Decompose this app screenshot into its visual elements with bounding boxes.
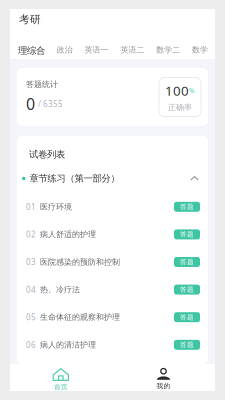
- staticText: %: [189, 86, 195, 95]
- staticText: 章节练习（第一部分）: [29, 173, 119, 184]
- staticText: 0: [26, 93, 35, 114]
- staticText: 答题: [180, 285, 194, 294]
- button[interactable]: 理综合: [18, 39, 45, 59]
- staticText: 答题统计: [26, 79, 58, 89]
- staticText: 政治: [57, 45, 73, 55]
- staticText: 100: [165, 82, 189, 99]
- button[interactable]: 05: [17, 303, 208, 331]
- button[interactable]: 数学: [192, 39, 208, 59]
- button[interactable]: 数学二: [156, 39, 180, 59]
- button[interactable]: 02: [17, 221, 208, 248]
- staticText: 数学: [192, 45, 208, 55]
- button[interactable]: 06: [17, 331, 208, 359]
- staticText: 答题: [180, 203, 194, 211]
- staticText: 英语二: [120, 45, 144, 55]
- button[interactable]: 01: [17, 193, 208, 221]
- button[interactable]: 首页: [10, 364, 112, 391]
- staticText: 06: [26, 339, 36, 350]
- staticText: 理综合: [18, 45, 45, 56]
- staticText: 01: [26, 201, 36, 212]
- staticText: 病人舒适的护理: [40, 229, 96, 239]
- staticText: 考研: [19, 13, 41, 26]
- button[interactable]: 04: [17, 276, 208, 303]
- staticText: 正确率: [168, 102, 192, 112]
- staticText: 答题: [180, 341, 194, 349]
- button[interactable]: 英语一: [85, 39, 109, 59]
- staticText: 英语一: [85, 45, 109, 55]
- staticText: 首页: [54, 383, 68, 391]
- staticText: 病人的清洁护理: [40, 340, 96, 350]
- button[interactable]: 我的: [112, 364, 215, 391]
- button[interactable]: 章节练习（第一部分）: [17, 167, 208, 193]
- staticText: 答题: [180, 258, 194, 266]
- staticText: 生命体征的观察和护理: [40, 312, 120, 322]
- staticText: 02: [26, 229, 36, 240]
- button[interactable]: 政治: [57, 39, 73, 59]
- button[interactable]: 英语二: [120, 39, 144, 59]
- staticText: 我的: [156, 382, 170, 390]
- staticText: 答题: [180, 313, 194, 321]
- staticText: 数学二: [156, 45, 180, 55]
- staticText: 04: [26, 284, 36, 295]
- button[interactable]: 03: [17, 248, 208, 276]
- staticText: 05: [26, 312, 36, 322]
- staticText: 03: [26, 257, 36, 267]
- staticText: 热、冷疗法: [40, 285, 80, 294]
- staticText: 试卷列表: [29, 149, 65, 160]
- staticText: 医院感染的预防和控制: [40, 257, 120, 267]
- staticText: / 6355: [38, 99, 63, 109]
- staticText: 答题: [180, 230, 194, 238]
- staticText: 医疗环境: [40, 202, 72, 212]
